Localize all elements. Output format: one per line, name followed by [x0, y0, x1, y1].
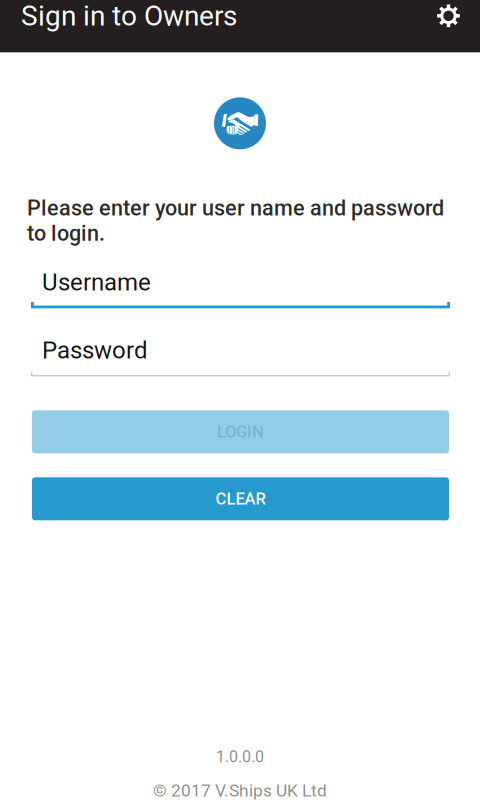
button[interactable]: Settings	[427, 0, 470, 32]
staticText: Password	[42, 336, 148, 364]
staticText: Username	[42, 268, 151, 296]
staticText: © 2017 V.Ships UK Ltd	[153, 780, 327, 800]
staticText: Please enter your user name and password…	[27, 195, 444, 246]
staticText: Sign in to Owners	[21, 0, 237, 32]
button[interactable]: CLEAR	[32, 477, 449, 520]
staticText: LOGIN	[217, 422, 264, 442]
staticText: CLEAR	[215, 489, 265, 509]
button[interactable]: LOGIN	[32, 410, 449, 453]
staticText: 1.0.0.0	[216, 747, 264, 766]
